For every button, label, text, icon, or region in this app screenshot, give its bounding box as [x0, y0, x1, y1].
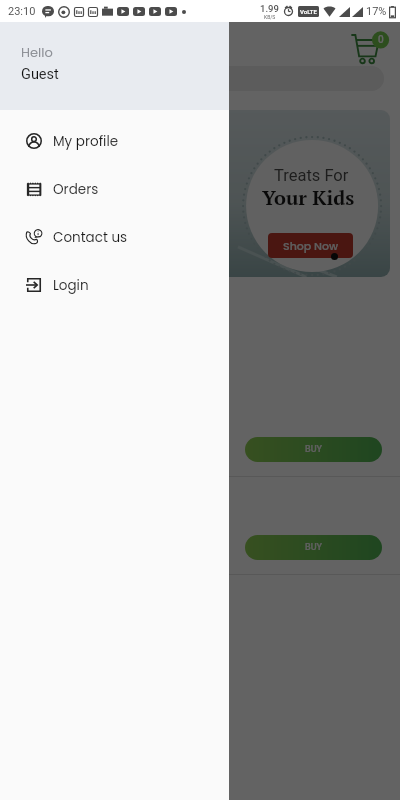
button[interactable]: Contact us — [0, 213, 229, 261]
button[interactable]: Shop Now — [268, 233, 353, 258]
button[interactable]: Treats For — [10, 110, 390, 277]
staticText: Contact us — [53, 228, 128, 247]
staticText: 17% — [366, 5, 387, 18]
staticText: KB/S — [264, 14, 276, 20]
staticText: 0 — [378, 34, 384, 46]
staticText: Guest — [21, 66, 59, 83]
staticText: BUY — [305, 542, 323, 553]
staticText: Shop Now — [283, 238, 339, 253]
staticText: My profile — [53, 132, 119, 151]
staticText: BUY — [305, 444, 323, 455]
staticText: Treats For — [274, 166, 349, 185]
button[interactable]: Login — [0, 261, 229, 309]
staticText: Your Kids — [262, 184, 355, 211]
staticText: VoLTE — [300, 8, 317, 15]
button[interactable]: My profile — [0, 117, 229, 165]
staticText: 1.99 — [260, 3, 279, 14]
button[interactable]: BUY — [245, 437, 382, 462]
button[interactable]: Orders — [0, 165, 229, 213]
staticText: Orders — [53, 180, 99, 199]
button[interactable]: BUY — [245, 535, 382, 560]
staticText: Hello — [21, 43, 53, 61]
staticText: 23:10 — [8, 5, 36, 18]
button[interactable] — [16, 66, 384, 91]
button[interactable]: Cart — [348, 28, 390, 70]
staticText: Login — [53, 276, 89, 295]
